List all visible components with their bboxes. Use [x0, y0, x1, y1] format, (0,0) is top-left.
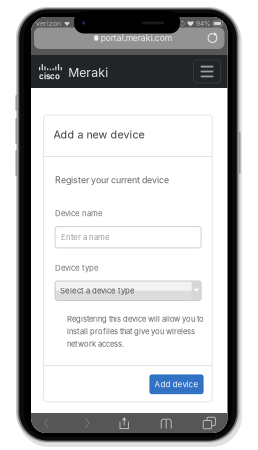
- staticText: 94%: [196, 19, 211, 28]
- staticText: portal.meraki.com: [101, 33, 172, 43]
- button[interactable]: Add device: [44, 115, 98, 135]
- staticText: ↺: [179, 19, 185, 28]
- button[interactable]: Tabs: [31, 17, 57, 37]
- button[interactable]: Menu: [31, 17, 58, 40]
- button[interactable]: Share: [31, 17, 57, 37]
- button[interactable]: Reload: [31, 17, 45, 31]
- staticText: Device name: [55, 209, 103, 218]
- staticText: cisco: [39, 71, 60, 81]
- button[interactable]: Back: [31, 17, 57, 37]
- staticText: Device type: [55, 263, 99, 273]
- staticText: Add device: [154, 379, 198, 389]
- button[interactable]: Bookmarks: [31, 17, 57, 37]
- button[interactable]: Forward: [31, 17, 57, 37]
- staticText: Register your current device: [55, 175, 169, 185]
- staticText: Enter a name: [61, 233, 110, 242]
- staticText: Meraki: [68, 65, 108, 80]
- staticText: install profiles that give you wireless: [67, 327, 195, 336]
- staticText: Add a new device: [54, 128, 145, 141]
- staticText: verizon: [36, 19, 61, 28]
- staticText: Select a device type: [60, 286, 135, 295]
- staticText: Registering this device will allow you t…: [67, 314, 204, 323]
- staticText: network access.: [67, 339, 124, 349]
